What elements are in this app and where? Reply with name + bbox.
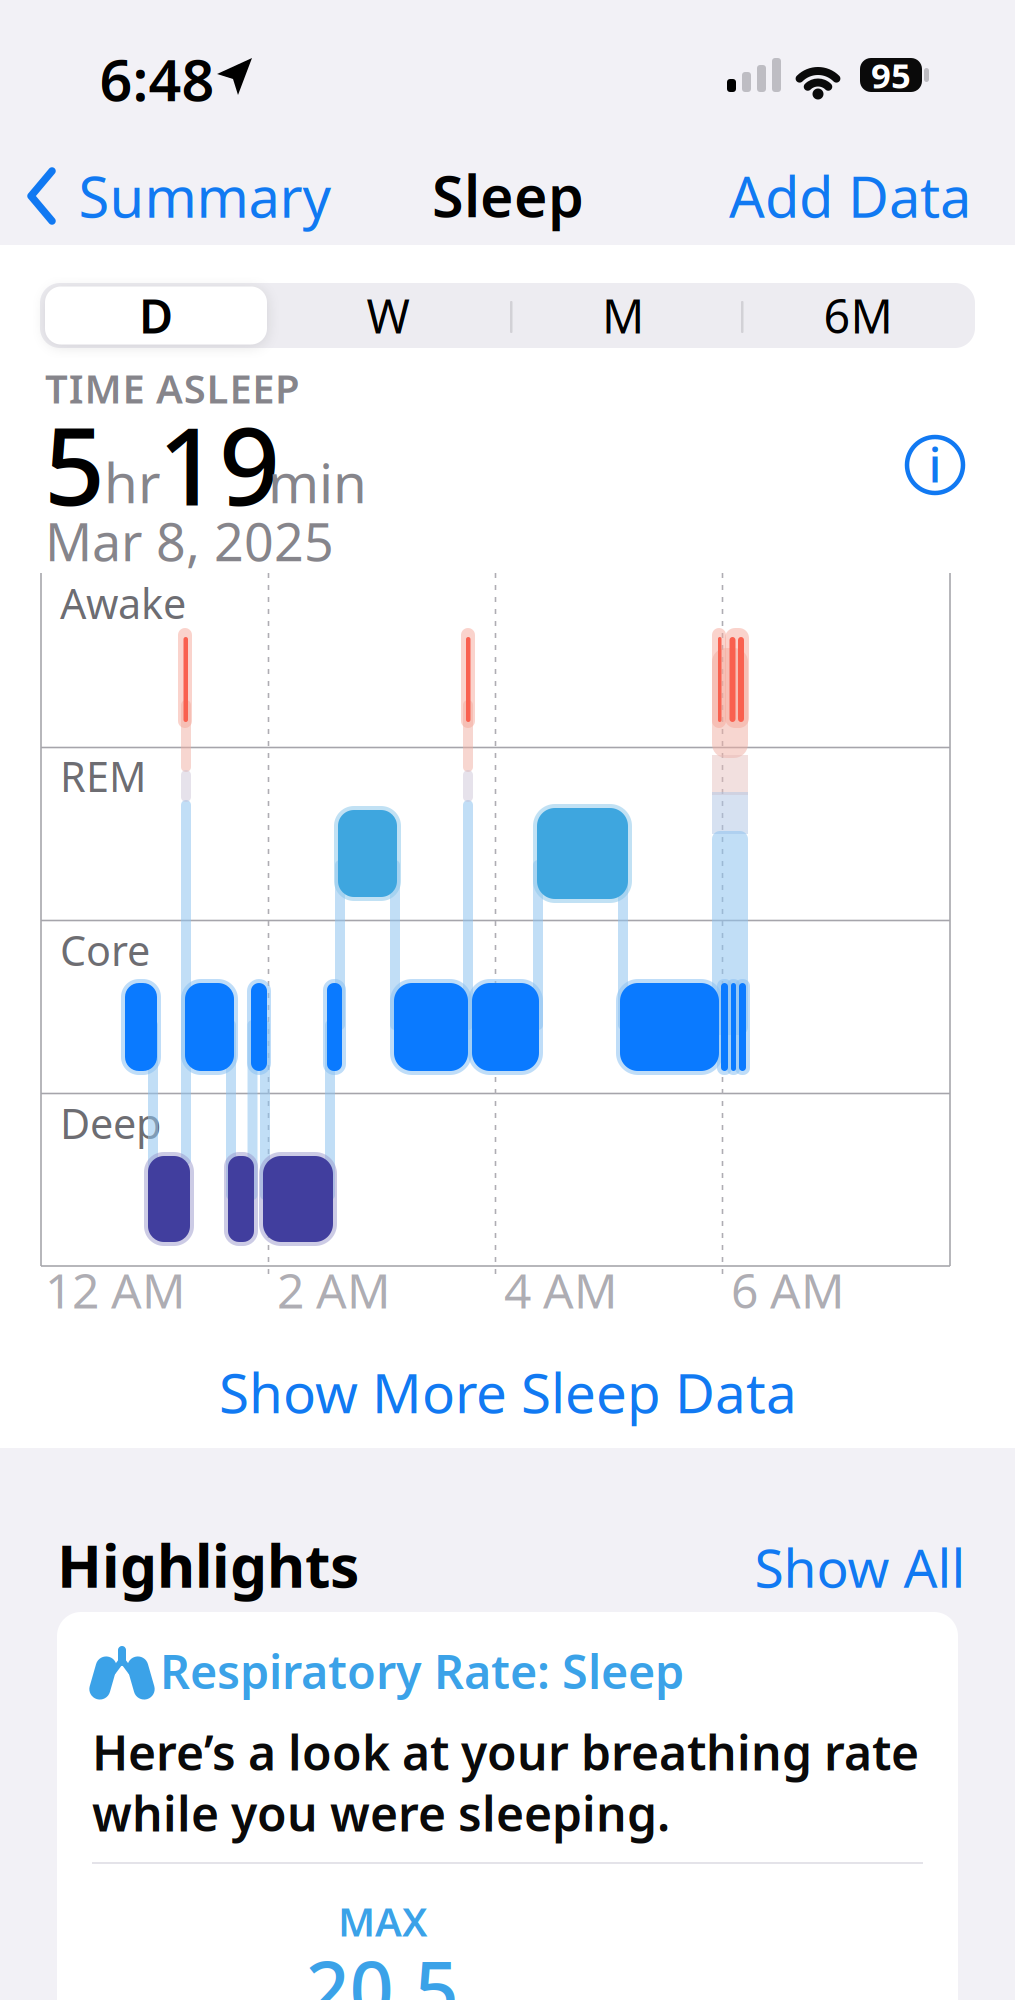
staticText: MAX <box>338 1894 428 1947</box>
staticText: min <box>268 446 367 518</box>
staticText: 6:48 <box>99 41 214 117</box>
button[interactable]: About Time Asleep <box>907 437 963 493</box>
button[interactable]: W <box>278 284 498 346</box>
staticText: Awake <box>60 576 186 630</box>
staticText: 6M <box>823 284 892 346</box>
staticText: Show More Sleep Data <box>219 1356 797 1428</box>
staticText: D <box>139 284 173 346</box>
staticText: 20.5 <box>305 1937 458 2000</box>
staticText: Add Data <box>729 159 971 233</box>
staticText: TIME ASLEEP <box>45 361 300 414</box>
button[interactable]: D <box>45 286 267 344</box>
button[interactable]: M <box>513 284 733 346</box>
button[interactable]: Back to Summary <box>20 151 300 241</box>
staticText: REM <box>60 749 146 803</box>
staticText: Show All <box>754 1532 965 1602</box>
staticText: hr <box>104 446 161 518</box>
staticText: Summary <box>78 159 331 233</box>
staticText: Core <box>60 923 150 977</box>
staticText: Respiratory Rate: Sleep <box>160 1640 684 1702</box>
staticText: M <box>602 284 644 346</box>
staticText: 5 <box>44 393 105 535</box>
staticText: 2 AM <box>277 1258 391 1322</box>
button[interactable]: Show All <box>745 1531 975 1603</box>
staticText: Deep <box>60 1096 161 1150</box>
button[interactable]: 6M <box>748 284 968 346</box>
staticText: 4 AM <box>504 1258 618 1322</box>
staticText: Here’s a look at your breathing rate <box>92 1720 919 1784</box>
staticText: Mar 8, 2025 <box>45 506 334 576</box>
staticText: 6 AM <box>731 1258 845 1322</box>
button[interactable] <box>57 1612 958 2000</box>
staticText: 95 <box>871 52 911 98</box>
staticText: Sleep <box>432 157 584 233</box>
staticText: W <box>366 284 409 346</box>
staticText: while you were sleeping. <box>92 1781 670 1845</box>
staticText: i <box>928 432 941 496</box>
staticText: 12 AM <box>45 1258 186 1322</box>
staticText: 19 <box>158 393 280 535</box>
button[interactable]: Show More Sleep Data <box>188 1350 828 1434</box>
button[interactable]: Add Data <box>730 154 970 238</box>
staticText: Highlights <box>57 1526 359 1604</box>
